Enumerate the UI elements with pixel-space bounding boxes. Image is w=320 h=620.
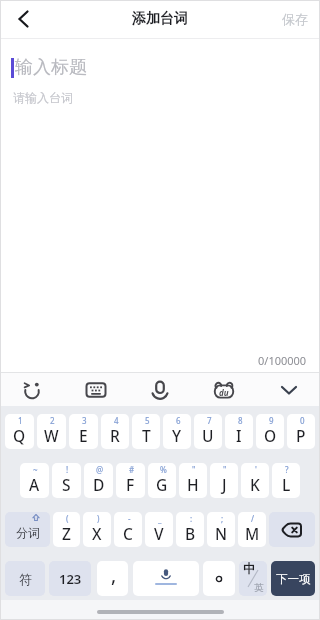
- button[interactable]: ?: [272, 463, 300, 498]
- staticText: F: [126, 474, 135, 495]
- staticText: G: [156, 474, 168, 495]
- staticText: ): [97, 513, 100, 524]
- button[interactable]: ": [210, 463, 238, 498]
- staticText: @: [96, 464, 104, 475]
- staticText: 添加台词: [132, 10, 188, 28]
- staticText: ": [192, 464, 196, 475]
- button[interactable]: 保存: [282, 11, 308, 27]
- staticText: 2: [50, 415, 55, 426]
- button[interactable]: !: [52, 463, 81, 498]
- button[interactable]: _: [145, 512, 173, 547]
- button[interactable]: [82, 376, 110, 404]
- staticText: 下一项: [276, 572, 311, 586]
- staticText: 中: [243, 561, 256, 577]
- staticText: 符: [19, 571, 32, 587]
- staticText: 6: [176, 415, 181, 426]
- staticText: ;: [221, 513, 224, 524]
- staticText: R: [110, 425, 120, 446]
- staticText: 7: [207, 415, 212, 426]
- staticText: O: [264, 425, 277, 446]
- button[interactable]: 0: [287, 414, 315, 449]
- staticText: I: [236, 425, 242, 446]
- staticText: du: [219, 387, 229, 398]
- staticText: 1: [18, 415, 23, 426]
- button[interactable]: -: [114, 512, 142, 547]
- staticText: 4: [114, 415, 119, 426]
- button[interactable]: @: [84, 463, 113, 498]
- staticText: -: [128, 513, 131, 524]
- staticText: K: [250, 474, 260, 495]
- staticText: 0/100000: [258, 353, 307, 368]
- staticText: 保存: [282, 11, 308, 27]
- staticText: ': [255, 464, 257, 475]
- staticText: _: [158, 513, 162, 524]
- button[interactable]: 分词: [5, 512, 50, 547]
- button[interactable]: 9: [256, 414, 284, 449]
- staticText: 5: [145, 415, 150, 426]
- staticText: /: [251, 513, 255, 524]
- button[interactable]: :: [176, 512, 204, 547]
- staticText: A: [29, 474, 40, 495]
- button[interactable]: ): [83, 512, 111, 547]
- button[interactable]: 4: [101, 414, 129, 449]
- staticText: !: [66, 464, 69, 475]
- button[interactable]: ,: [97, 561, 128, 596]
- staticText: Y: [172, 425, 182, 446]
- staticText: L: [282, 474, 291, 495]
- button[interactable]: 123: [49, 561, 91, 596]
- staticText: #: [129, 464, 135, 475]
- staticText: ,: [111, 562, 117, 588]
- button[interactable]: #: [116, 463, 145, 498]
- staticText: E: [79, 425, 88, 446]
- staticText: %: [160, 464, 167, 475]
- staticText: (: [66, 513, 69, 524]
- staticText: Z: [62, 523, 71, 544]
- button[interactable]: %: [148, 463, 176, 498]
- staticText: N: [215, 523, 228, 544]
- staticText: C: [123, 523, 133, 544]
- button[interactable]: [146, 376, 174, 404]
- staticText: H: [187, 474, 199, 495]
- staticText: :: [190, 513, 193, 524]
- button[interactable]: ": [179, 463, 207, 498]
- button[interactable]: [275, 376, 303, 404]
- staticText: W: [44, 425, 59, 446]
- button[interactable]: 2: [37, 414, 66, 449]
- staticText: S: [62, 474, 71, 495]
- button[interactable]: du: [210, 376, 238, 404]
- staticText: D: [93, 474, 105, 495]
- staticText: 请输入台词: [13, 90, 73, 105]
- button[interactable]: [10, 5, 38, 33]
- staticText: V: [154, 523, 164, 544]
- staticText: X: [92, 523, 102, 544]
- button[interactable]: ': [241, 463, 269, 498]
- button[interactable]: 3: [69, 414, 98, 449]
- button[interactable]: 5: [132, 414, 160, 449]
- staticText: 123: [59, 570, 82, 588]
- button[interactable]: 7: [194, 414, 222, 449]
- button[interactable]: [133, 561, 199, 596]
- button[interactable]: 8: [225, 414, 253, 449]
- button[interactable]: [203, 561, 235, 596]
- staticText: 8: [238, 415, 243, 426]
- staticText: 分词: [16, 525, 40, 540]
- button[interactable]: /: [238, 512, 266, 547]
- button[interactable]: ;: [207, 512, 235, 547]
- staticText: U: [202, 425, 214, 446]
- staticText: T: [142, 425, 151, 446]
- button[interactable]: 1: [5, 414, 34, 449]
- button[interactable]: [269, 512, 315, 547]
- staticText: 英: [254, 582, 264, 594]
- button[interactable]: 下一项: [271, 561, 315, 596]
- staticText: B: [185, 523, 196, 544]
- button[interactable]: 6: [163, 414, 191, 449]
- staticText: J: [222, 474, 227, 495]
- staticText: ?: [285, 464, 289, 475]
- button[interactable]: 符: [5, 561, 45, 596]
- button[interactable]: 中: [239, 561, 267, 596]
- button[interactable]: ~: [20, 463, 49, 498]
- staticText: 0: [300, 415, 305, 426]
- button[interactable]: [18, 376, 46, 404]
- button[interactable]: (: [53, 512, 80, 547]
- staticText: 9: [269, 415, 274, 426]
